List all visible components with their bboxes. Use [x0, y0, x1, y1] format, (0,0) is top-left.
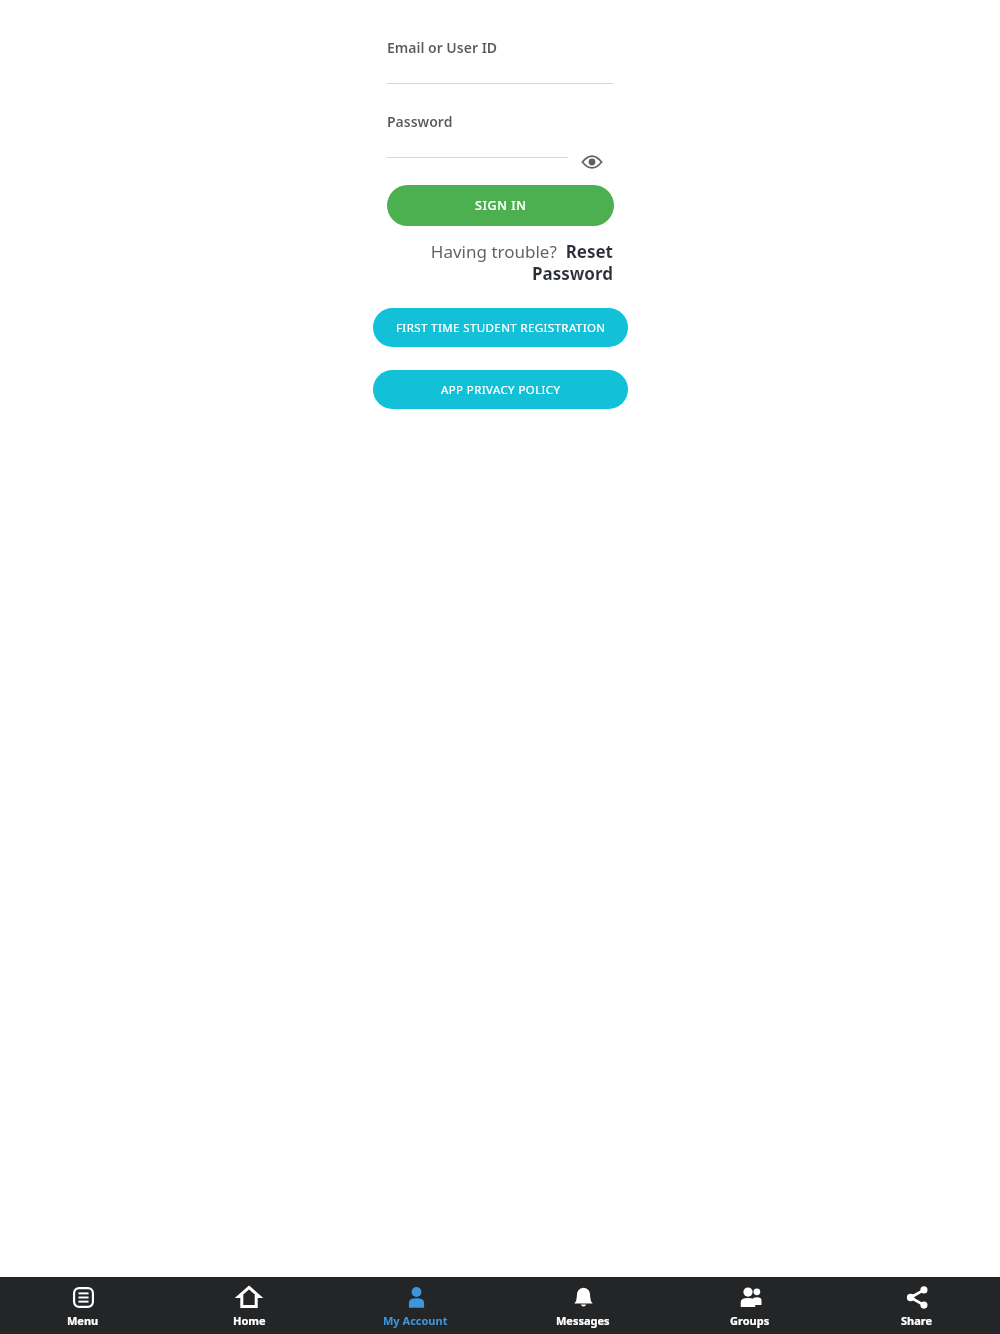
- staticText: SIGN IN: [475, 197, 527, 214]
- button[interactable]: Home: [166, 1277, 332, 1334]
- staticText: APP PRIVACY POLICY: [441, 382, 561, 398]
- staticText: Email or User ID: [387, 38, 498, 57]
- button[interactable]: Menu: [0, 1277, 166, 1334]
- staticText: Having trouble? Reset Password: [393, 240, 613, 285]
- button[interactable]: Share: [833, 1277, 1000, 1334]
- staticText: Groups: [730, 1313, 770, 1328]
- button[interactable]: My Account: [332, 1277, 499, 1334]
- button[interactable]: SIGN IN: [387, 185, 614, 226]
- button[interactable]: APP PRIVACY POLICY: [373, 370, 628, 409]
- staticText: Menu: [67, 1313, 99, 1328]
- staticText: Messages: [556, 1313, 610, 1328]
- button[interactable]: Messages: [499, 1277, 666, 1334]
- button[interactable]: Groups: [666, 1277, 833, 1334]
- staticText: Home: [233, 1313, 266, 1328]
- button[interactable]: Show password: [576, 146, 608, 178]
- button[interactable]: Having trouble? Reset Password: [393, 240, 613, 285]
- button[interactable]: FIRST TIME STUDENT REGISTRATION: [373, 308, 628, 347]
- staticText: My Account: [383, 1313, 448, 1328]
- staticText: Password: [387, 112, 453, 131]
- staticText: FIRST TIME STUDENT REGISTRATION: [396, 320, 606, 336]
- staticText: Share: [901, 1313, 933, 1328]
